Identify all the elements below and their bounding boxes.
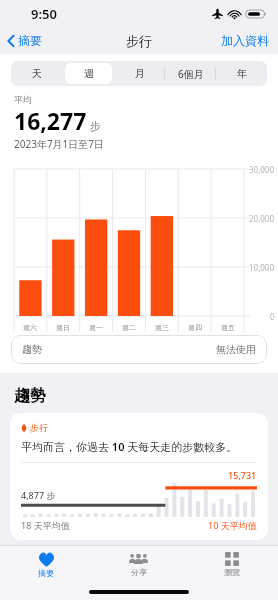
staticText: 瀏覽 — [224, 567, 240, 577]
staticText: 2023年7月1日至7日 — [14, 137, 105, 151]
staticText: 18 天平均值 — [21, 519, 70, 531]
other: 摘要 — [38, 552, 55, 567]
staticText: 週 — [84, 67, 94, 80]
button[interactable]: 步行 — [10, 413, 268, 540]
button[interactable]: 加入資料 — [212, 29, 278, 52]
button[interactable]: 瀏覽 — [185, 546, 278, 583]
button[interactable]: 週 — [65, 63, 112, 84]
staticText: 摘要 — [38, 568, 54, 578]
staticText: 步行 — [126, 33, 152, 49]
staticText: 10,000 — [249, 262, 275, 273]
staticText: 週四 — [188, 323, 202, 332]
staticText: 步行 — [30, 422, 48, 433]
staticText: 30,000 — [249, 164, 275, 175]
button[interactable]: 6個月 — [167, 63, 214, 84]
staticText: 天 — [32, 67, 42, 80]
staticText: 9:50 — [31, 5, 57, 23]
staticText: 摘要 — [18, 33, 42, 48]
staticText: 平均 — [14, 94, 32, 105]
other: 分享 — [129, 553, 148, 566]
staticText: 分享 — [131, 567, 147, 577]
staticText: 6個月 — [178, 67, 204, 81]
button[interactable]: 天 — [13, 63, 61, 84]
button[interactable]: 年 — [218, 63, 265, 84]
button[interactable]: 月 — [116, 63, 163, 84]
staticText: 週三 — [155, 323, 169, 332]
staticText: 4,877 步 — [21, 489, 56, 501]
button[interactable]: 摘要 — [0, 29, 49, 52]
staticText: 趨勢 — [22, 343, 42, 356]
button[interactable]: 趨勢 — [11, 335, 267, 364]
staticText: 10 天平均值 — [208, 519, 257, 531]
staticText: 週一 — [89, 323, 103, 332]
staticText: 週二 — [122, 323, 136, 332]
button[interactable]: 摘要 — [0, 546, 92, 583]
staticText: 月 — [135, 67, 145, 80]
staticText: 週五 — [221, 323, 235, 332]
staticText: 平均而言，你過去 10 天每天走的步數較多。 — [21, 439, 238, 454]
staticText: 0 — [270, 311, 275, 322]
staticText: 週日 — [56, 323, 70, 332]
staticText: 趨勢 — [14, 386, 46, 406]
staticText: 無法使用 — [216, 343, 256, 356]
staticText: 20,000 — [249, 213, 275, 224]
staticText: 年 — [237, 67, 247, 80]
staticText: 16,277 — [14, 105, 87, 136]
staticText: 步 — [90, 119, 101, 133]
button[interactable]: 分享 — [92, 546, 185, 583]
other: 瀏覽 — [225, 552, 239, 566]
staticText: 15,731 — [228, 469, 257, 481]
staticText: 週六 — [23, 323, 37, 332]
